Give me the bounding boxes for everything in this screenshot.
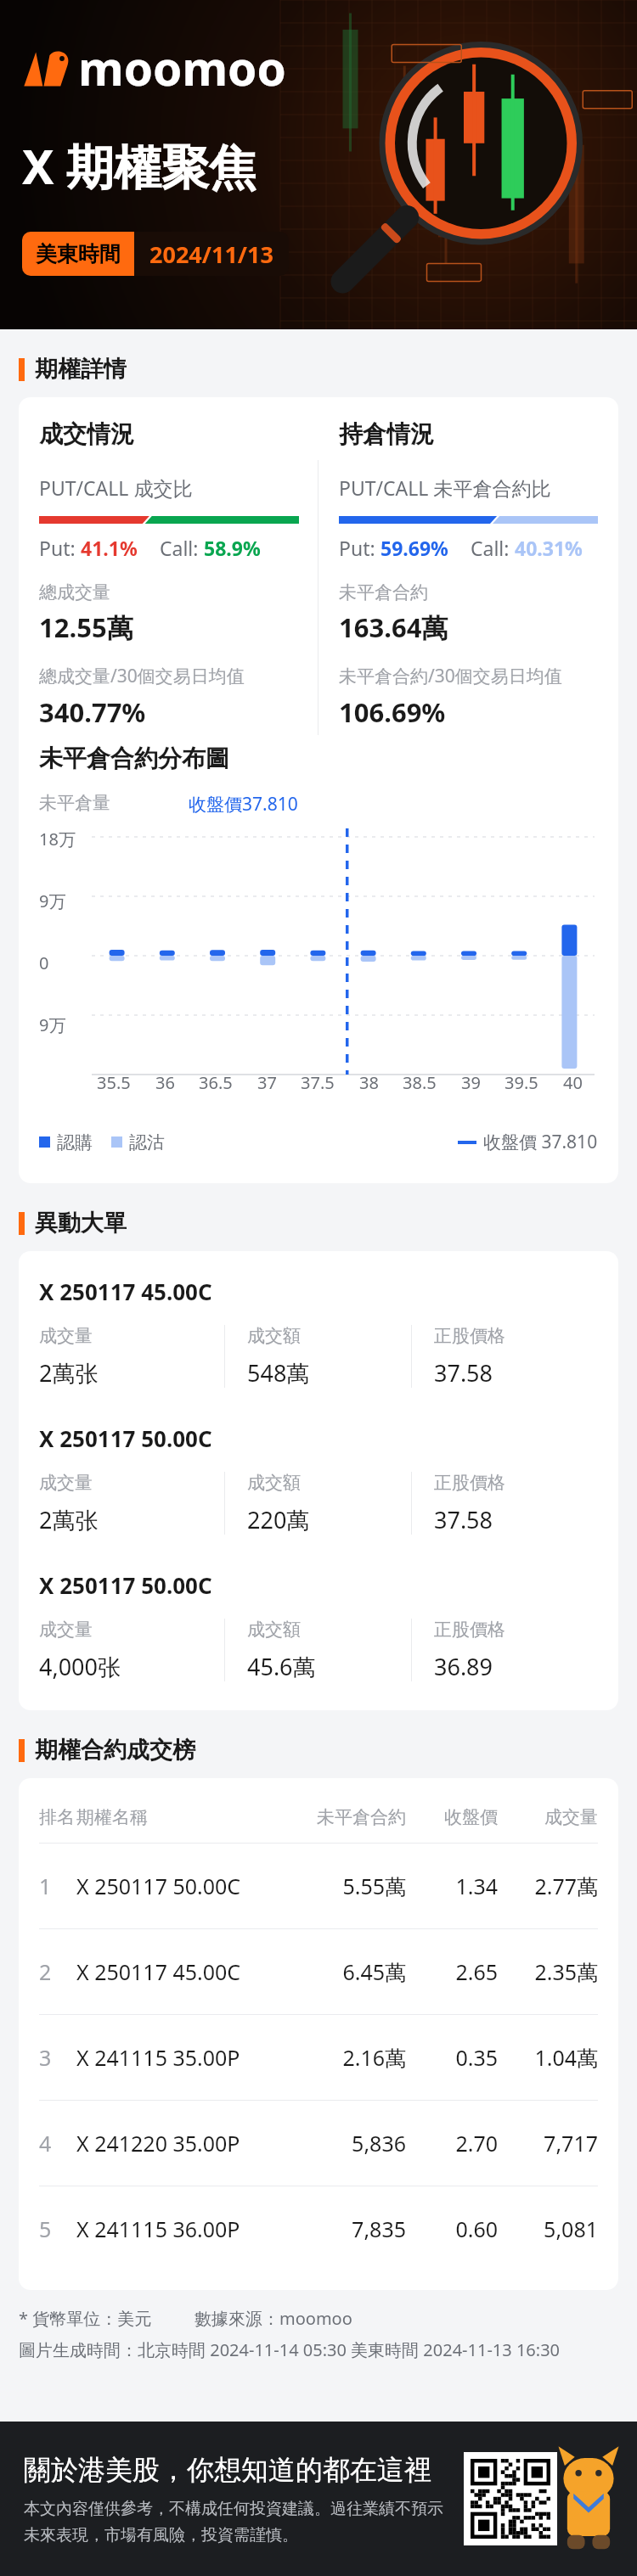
- staticText: 本文內容僅供參考，不構成任何投資建議。過往業績不預示未來表現，市場有風險，投資需…: [24, 2499, 457, 2545]
- staticText: 3: [39, 2043, 76, 2072]
- button[interactable]: X 250117 45.00C: [19, 1277, 618, 1388]
- staticText: 成交額: [247, 1619, 301, 1641]
- staticText: 排名: [39, 1806, 76, 1828]
- staticText: Call:: [160, 535, 204, 561]
- staticText: 正股價格: [434, 1325, 505, 1347]
- staticText: * 貨幣單位：美元: [19, 2307, 152, 2330]
- staticText: X 250117 45.00C: [76, 1957, 297, 1986]
- staticText: 35.5: [97, 1071, 131, 1094]
- staticText: 37.58: [434, 1357, 493, 1388]
- staticText: 5,081: [498, 2214, 598, 2243]
- staticText: 總成交量/30個交易日均值: [39, 664, 245, 688]
- staticText: 1.34: [406, 1872, 498, 1900]
- staticText: 40: [563, 1071, 583, 1094]
- staticText: 2萬张: [39, 1504, 99, 1535]
- staticText: 期權合約成交榜: [35, 1736, 195, 1765]
- staticText: 37: [257, 1071, 277, 1094]
- button[interactable]: 2: [19, 1929, 618, 2014]
- staticText: 未平倉合約/30個交易日均值: [339, 664, 562, 688]
- staticText: X 250117 50.00C: [39, 1423, 212, 1453]
- staticText: 成交量: [39, 1619, 93, 1641]
- staticText: moomoo: [78, 36, 286, 99]
- staticText: 4: [39, 2129, 76, 2158]
- staticText: 2.77萬: [498, 1872, 598, 1900]
- staticText: 5,836: [297, 2129, 406, 2158]
- staticText: 關於港美股，你想知道的都在這裡: [24, 2453, 431, 2487]
- button[interactable]: 3: [19, 2015, 618, 2100]
- staticText: 美東時間: [36, 241, 121, 267]
- staticText: 2.65: [406, 1957, 498, 1986]
- staticText: 7,835: [297, 2214, 406, 2243]
- button[interactable]: 1: [19, 1844, 618, 1928]
- button[interactable]: X 250117 50.00C: [19, 1423, 618, 1535]
- staticText: Put:: [339, 535, 381, 561]
- staticText: 正股價格: [434, 1472, 505, 1494]
- staticText: 認購: [57, 1131, 93, 1153]
- staticText: 0.35: [406, 2043, 498, 2072]
- staticText: X 250117 50.00C: [76, 1872, 297, 1900]
- staticText: 成交額: [247, 1472, 301, 1494]
- staticText: 未平倉合約: [339, 581, 428, 603]
- staticText: 2: [39, 1957, 76, 1986]
- staticText: 正股價格: [434, 1619, 505, 1641]
- button[interactable]: 4: [19, 2101, 618, 2186]
- staticText: 持倉情況: [339, 419, 434, 449]
- staticText: 收盤價: [406, 1806, 498, 1828]
- staticText: 106.69%: [339, 694, 446, 730]
- staticText: X 250117 50.00C: [39, 1570, 212, 1600]
- staticText: 18万: [39, 828, 76, 850]
- staticText: 59.69%: [381, 535, 448, 561]
- staticText: 異動大單: [35, 1209, 127, 1237]
- staticText: 成交量: [39, 1472, 93, 1494]
- staticText: 成交量: [498, 1806, 598, 1828]
- staticText: 9万: [39, 1013, 66, 1036]
- staticText: 成交量: [39, 1325, 93, 1347]
- staticText: PUT/CALL 未平倉合約比: [339, 474, 551, 501]
- staticText: 2.70: [406, 2129, 498, 2158]
- staticText: 6.45萬: [297, 1957, 406, 1986]
- staticText: 7,717: [498, 2129, 598, 2158]
- staticText: X 250117 45.00C: [39, 1277, 212, 1306]
- staticText: 9万: [39, 890, 66, 912]
- staticText: 36: [155, 1071, 175, 1094]
- staticText: 收盤價37.810: [189, 792, 298, 817]
- staticText: 39: [461, 1071, 481, 1094]
- staticText: PUT/CALL 成交比: [39, 474, 193, 501]
- staticText: 1: [39, 1872, 76, 1900]
- staticText: 0.60: [406, 2214, 498, 2243]
- staticText: 總成交量: [39, 581, 110, 603]
- staticText: 2024/11/13: [149, 239, 273, 270]
- staticText: 340.77%: [39, 694, 146, 730]
- staticText: 未平倉合約: [297, 1806, 406, 1828]
- staticText: 37.58: [434, 1504, 493, 1535]
- staticText: 圖片生成時間：北京時間 2024-11-14 05:30 美東時間 2024-1…: [19, 2338, 561, 2361]
- staticText: 5: [39, 2214, 76, 2243]
- staticText: 36.5: [199, 1071, 233, 1094]
- staticText: 39.5: [505, 1071, 538, 1094]
- staticText: 未平倉合約分布圖: [39, 744, 229, 773]
- staticText: 548萬: [247, 1357, 310, 1388]
- staticText: 收盤價 37.810: [483, 1130, 598, 1154]
- staticText: 45.6萬: [247, 1651, 316, 1681]
- staticText: 2萬张: [39, 1357, 99, 1388]
- staticText: 2.35萬: [498, 1957, 598, 1986]
- staticText: 數據來源：moomoo: [194, 2307, 352, 2330]
- staticText: X 241115 35.00P: [76, 2043, 297, 2072]
- button[interactable]: 5: [19, 2186, 618, 2271]
- staticText: Put:: [39, 535, 81, 561]
- staticText: 12.55萬: [39, 609, 133, 645]
- other: QR code: [464, 2452, 557, 2545]
- staticText: 期權名稱: [76, 1806, 297, 1828]
- staticText: 58.9%: [204, 535, 261, 561]
- staticText: 5.55萬: [297, 1872, 406, 1900]
- staticText: Call:: [471, 535, 515, 561]
- staticText: 37.5: [301, 1071, 335, 1094]
- staticText: 40.31%: [515, 535, 583, 561]
- staticText: 36.89: [434, 1651, 493, 1681]
- staticText: 2.16萬: [297, 2043, 406, 2072]
- staticText: 163.64萬: [339, 609, 448, 645]
- button[interactable]: X 250117 50.00C: [19, 1570, 618, 1681]
- staticText: 41.1%: [81, 535, 138, 561]
- staticText: 0: [39, 951, 49, 974]
